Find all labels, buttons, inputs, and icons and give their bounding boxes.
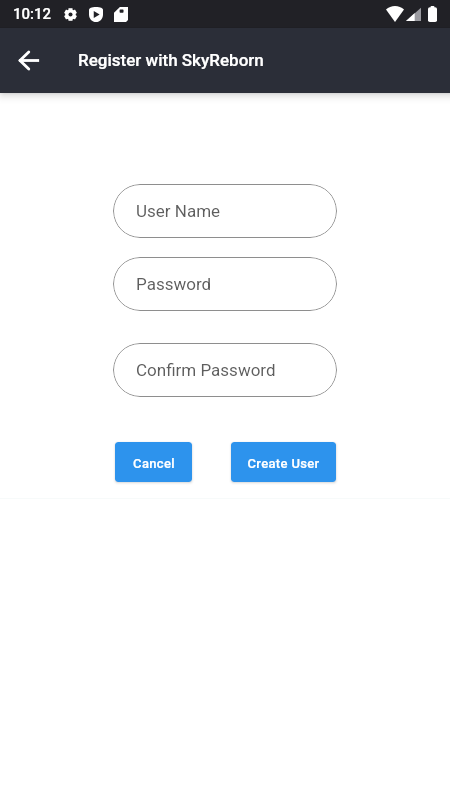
button[interactable]: Password xyxy=(113,257,337,311)
button[interactable]: Confirm Password xyxy=(113,343,337,397)
button[interactable]: Back xyxy=(13,45,44,76)
button[interactable]: Cancel xyxy=(115,442,192,482)
button[interactable]: Create User xyxy=(231,442,336,482)
staticText: Cancel xyxy=(133,456,175,471)
staticText: Confirm Password xyxy=(136,360,276,380)
staticText: Password xyxy=(136,274,212,294)
staticText: 10:12 xyxy=(13,5,52,23)
staticText: User Name xyxy=(136,201,221,221)
button[interactable]: User Name xyxy=(113,184,337,238)
staticText: Create User xyxy=(247,456,320,471)
staticText: Register with SkyReborn xyxy=(78,50,264,70)
